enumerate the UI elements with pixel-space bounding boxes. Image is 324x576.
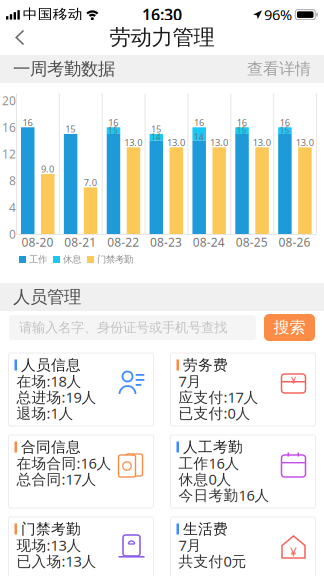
staticText: 14 [151,132,161,142]
staticText: 7.0 [84,176,97,188]
staticText: 劳务费 [183,356,228,374]
button[interactable]: 劳务费 [170,353,315,426]
staticText: 门禁考勤 [97,254,133,265]
staticText: 门禁考勤 [21,520,81,538]
staticText: 13.0 [210,136,228,148]
button[interactable]: 门禁考勤 [8,517,153,576]
staticText: ¥ [290,544,297,560]
staticText: 搜索 [273,318,305,337]
staticText: 9.0 [41,163,54,175]
staticText: 8 [9,173,16,189]
staticText: 今日考勤16人 [178,485,269,505]
staticText: 16 [2,119,16,135]
staticText: 08-22 [107,234,139,250]
button[interactable]: Back [0,20,38,54]
staticText: 已支付:0人 [178,403,250,423]
staticText: 现场:13人 [16,535,81,555]
staticText: 08-24 [193,234,225,250]
staticText: 16 [280,116,290,128]
staticText: 15 [151,123,161,135]
staticText: 0 [9,226,16,242]
staticText: 工作 [29,254,47,265]
staticText: 08-20 [21,234,53,250]
staticText: 15 [280,125,290,136]
staticText: 合同信息 [21,438,81,456]
staticText: 16:30 [142,4,182,25]
staticText: 查看详情 [247,59,311,79]
staticText: 4 [9,199,16,215]
staticText: 共支付0元 [178,551,246,571]
staticText: 退场:1人 [16,403,73,423]
staticText: 13.0 [296,136,314,148]
staticText: 12 [2,146,16,162]
button[interactable]: 人工考勤 [170,435,315,508]
staticText: ¥ [291,374,296,386]
staticText: 13.0 [167,136,185,148]
staticText: 7月 [178,535,201,555]
staticText: 应支付:17人 [178,387,258,407]
staticText: 一周考勤数据 [13,58,115,80]
staticText: 08-26 [279,234,311,250]
staticText: 7月 [178,371,201,391]
staticText: 工作16人 [178,453,239,473]
staticText: 休息 [63,254,81,265]
staticText: 总合同:17人 [16,469,96,489]
staticText: 请输入名字、身份证号或手机号查找 [19,319,227,336]
staticText: 在场:18人 [16,371,81,391]
staticText: 20 [2,93,16,108]
button[interactable]: 人员信息 [8,353,153,426]
staticText: 13.0 [124,136,142,148]
button[interactable]: 生活费 [170,517,315,576]
staticText: 15 [108,125,118,136]
staticText: 08-23 [150,234,182,250]
staticText: 已入场:13人 [16,551,96,571]
button[interactable]: 搜索 [264,314,315,341]
staticText: 在场合同:16人 [16,453,111,473]
button[interactable]: 合同信息 [8,435,153,508]
button[interactable]: 查看详情 [247,59,311,79]
staticText: 08-21 [64,234,96,250]
staticText: 16 [237,116,247,128]
staticText: 人员管理 [13,286,81,308]
staticText: 总进场:19人 [16,387,96,407]
staticText: 人员信息 [21,356,81,374]
staticText: 人工考勤 [183,438,243,456]
staticText: 休息0人 [178,469,231,489]
staticText: 16 [108,116,118,128]
staticText: 16 [194,116,204,128]
staticText: 中国移动 [23,6,83,24]
staticText: 08-25 [236,234,268,250]
staticText: 劳动力管理 [109,24,214,51]
staticText: 生活费 [183,520,228,538]
staticText: 15 [237,125,247,136]
staticText: 96% [264,5,292,24]
staticText: 16 [22,116,32,128]
staticText: 13.0 [253,136,271,148]
staticText: 15 [65,123,75,135]
staticText: 14 [194,132,204,142]
